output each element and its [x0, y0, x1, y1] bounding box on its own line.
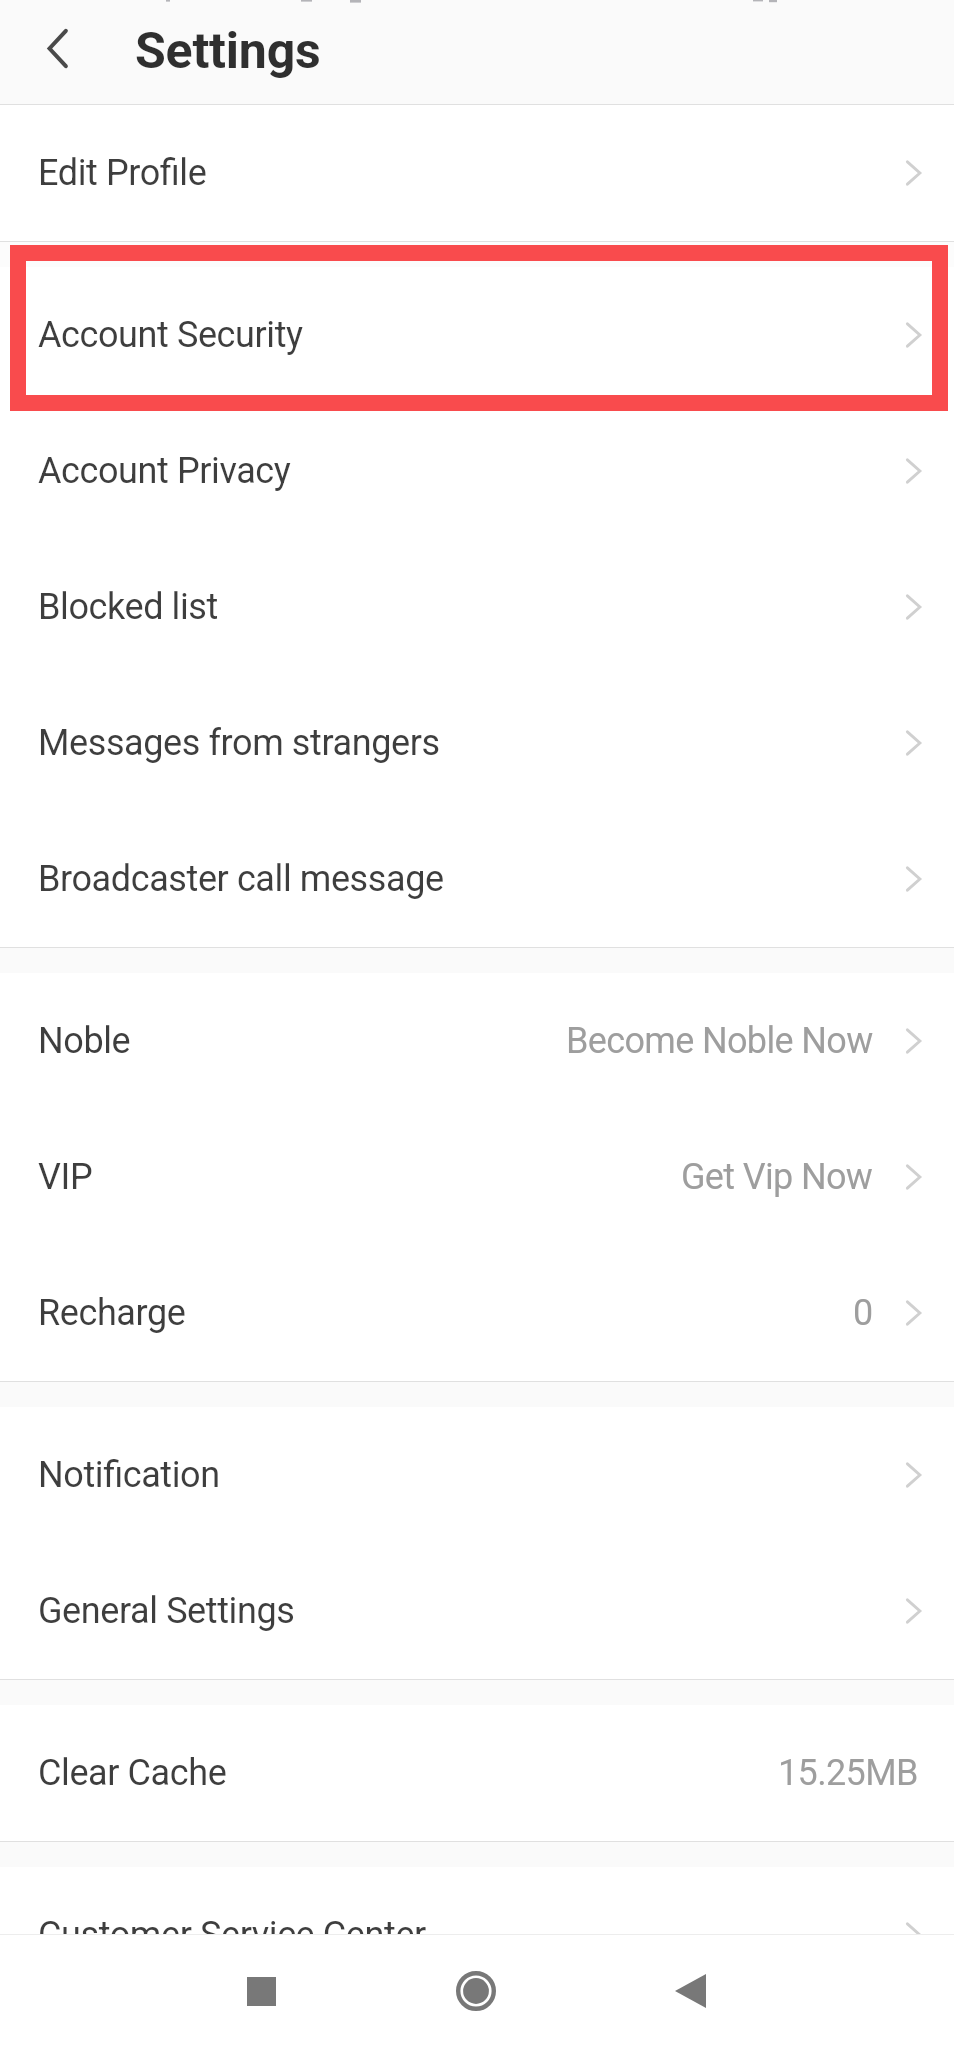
button[interactable]: General Settings — [0, 1543, 954, 1679]
button[interactable]: Edit Profile — [0, 105, 954, 241]
staticText: Settings — [135, 22, 321, 81]
staticText: Customer Service Center — [38, 1914, 426, 1956]
staticText: Notification — [38, 1454, 220, 1496]
staticText: VIP — [38, 1156, 93, 1198]
staticText: Account Security — [38, 314, 303, 356]
button[interactable]: Messages from strangers — [0, 675, 954, 811]
button[interactable]: Customer Service Center — [0, 1867, 954, 2003]
button[interactable]: Navigate up — [29, 24, 85, 80]
staticText: 0 — [853, 1292, 873, 1334]
button[interactable]: Home — [431, 1946, 521, 2036]
button[interactable]: Recharge — [0, 1245, 954, 1381]
button[interactable]: Back — [645, 1946, 735, 2036]
button[interactable]: Noble — [0, 973, 954, 1109]
button[interactable]: Account Privacy — [0, 403, 954, 539]
staticText: Blocked list — [38, 586, 218, 628]
staticText: Become Noble Now — [566, 1020, 873, 1062]
button[interactable]: VIP — [0, 1109, 954, 1245]
button[interactable]: Notification — [0, 1407, 954, 1543]
staticText: Messages from strangers — [38, 722, 440, 764]
staticText: Clear Cache — [38, 1752, 227, 1794]
button[interactable]: Broadcaster call message — [0, 811, 954, 947]
staticText: Account Privacy — [38, 450, 291, 492]
staticText: Broadcaster call message — [38, 858, 444, 900]
button[interactable]: Recent apps — [216, 1946, 306, 2036]
button[interactable]: Account Security — [0, 267, 954, 403]
staticText: Recharge — [38, 1292, 186, 1334]
staticText: 15.25MB — [778, 1752, 918, 1794]
button[interactable]: Blocked list — [0, 539, 954, 675]
button[interactable]: Clear Cache — [0, 1705, 954, 1841]
staticText: Edit Profile — [38, 152, 207, 194]
staticText: Noble — [38, 1020, 131, 1062]
staticText: General Settings — [38, 1590, 295, 1632]
staticText: Get Vip Now — [681, 1156, 873, 1198]
